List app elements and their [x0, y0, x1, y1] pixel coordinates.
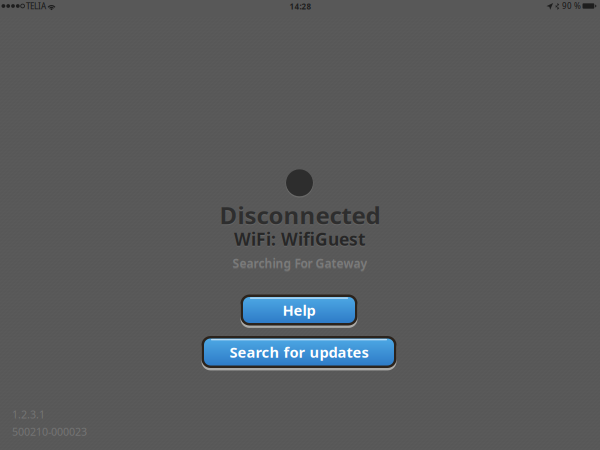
- staticText: Searching For Gateway: [232, 255, 367, 271]
- button[interactable]: Help: [237, 291, 360, 328]
- staticText: 500210-000023: [12, 424, 87, 439]
- staticText: TELIA: [26, 1, 46, 11]
- staticText: Disconnected: [219, 200, 380, 232]
- staticText: WiFi: WifiGuest: [234, 227, 366, 250]
- staticText: Disconnected: [219, 199, 380, 231]
- staticText: 90 %: [562, 1, 581, 11]
- staticText: Help: [282, 300, 315, 320]
- button[interactable]: Search for updates: [198, 333, 399, 371]
- staticText: Searching For Gateway: [232, 256, 367, 272]
- staticText: 1.2.3.1: [12, 407, 45, 421]
- staticText: 14:28: [289, 1, 311, 12]
- staticText: WiFi: WifiGuest: [234, 228, 366, 251]
- staticText: Search for updates: [229, 342, 368, 362]
